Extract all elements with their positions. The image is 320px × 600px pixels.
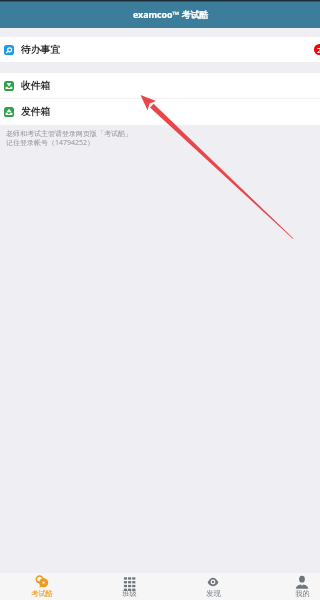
button[interactable]: 发现 (191, 573, 235, 600)
staticText: 班级 (122, 589, 137, 598)
staticText: 记住登录帐号（14794252） (6, 138, 95, 148)
button[interactable]: 发件箱 (0, 99, 320, 125)
staticText: 我的 (295, 589, 310, 598)
staticText: examcoo™ 考试酷 (133, 9, 209, 21)
staticText: 老师和考试主管请登录网页版「考试酷」 (6, 129, 132, 138)
staticText: 待办事宜 (21, 44, 61, 56)
staticText: 2 (317, 45, 320, 55)
button[interactable]: 考试酷 (20, 573, 64, 600)
button[interactable]: 班级 (107, 573, 151, 600)
button[interactable]: 我的 (280, 573, 320, 600)
staticText: 考试酷 (31, 589, 53, 598)
staticText: 发现 (206, 589, 221, 598)
button[interactable]: 收件箱 (0, 73, 320, 98)
staticText: 发件箱 (21, 106, 51, 118)
staticText: 收件箱 (21, 80, 51, 92)
button[interactable]: 待办事宜 (0, 37, 320, 62)
